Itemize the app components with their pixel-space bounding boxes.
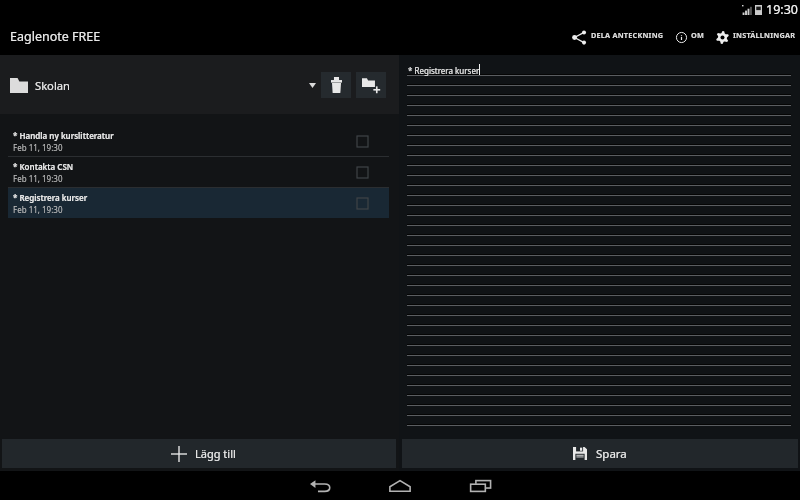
button[interactable]: Back (290, 471, 350, 500)
staticText: Feb 11, 19:30 (13, 173, 63, 184)
staticText: Eaglenote FREE (10, 28, 101, 45)
button[interactable]: Lägg till (2, 439, 396, 468)
staticText: Lägg till (195, 446, 236, 461)
staticText: INSTÄLLNINGAR (733, 30, 796, 40)
staticText: * Kontakta CSN (13, 161, 74, 172)
staticText: Feb 11, 19:30 (13, 204, 63, 215)
button[interactable]: Spara (402, 439, 798, 468)
staticText: 19:30 (766, 1, 798, 18)
staticText: * Handla ny kurslitteratur (13, 130, 114, 141)
staticText: * Registrera kurser (13, 192, 88, 203)
staticText: Feb 11, 19:30 (13, 142, 63, 153)
button[interactable]: Toggle done (357, 136, 368, 147)
button[interactable]: Toggle done (357, 198, 368, 209)
button[interactable]: * Kontakta CSN (8, 157, 389, 187)
staticText: * Registrera kurser (408, 65, 480, 76)
staticText: OM (691, 30, 705, 40)
button[interactable]: Toggle done (357, 167, 368, 178)
button[interactable]: DELA ANTECKNING (572, 19, 664, 55)
button[interactable]: INSTÄLLNINGAR (716, 19, 796, 55)
button[interactable]: * Handla ny kurslitteratur (8, 126, 389, 156)
staticText: Skolan (35, 78, 70, 93)
button[interactable]: * Registrera kurser (8, 188, 389, 218)
button[interactable]: Choose folder (304, 72, 320, 98)
button[interactable]: Recent apps (450, 471, 510, 500)
button[interactable]: OM (676, 19, 705, 55)
button[interactable]: Home (370, 471, 430, 500)
button[interactable]: Skolan (10, 77, 304, 93)
staticText: DELA ANTECKNING (591, 30, 664, 40)
button[interactable]: New folder (356, 72, 386, 98)
staticText: Spara (596, 446, 627, 462)
button[interactable]: Delete folder (321, 72, 351, 98)
